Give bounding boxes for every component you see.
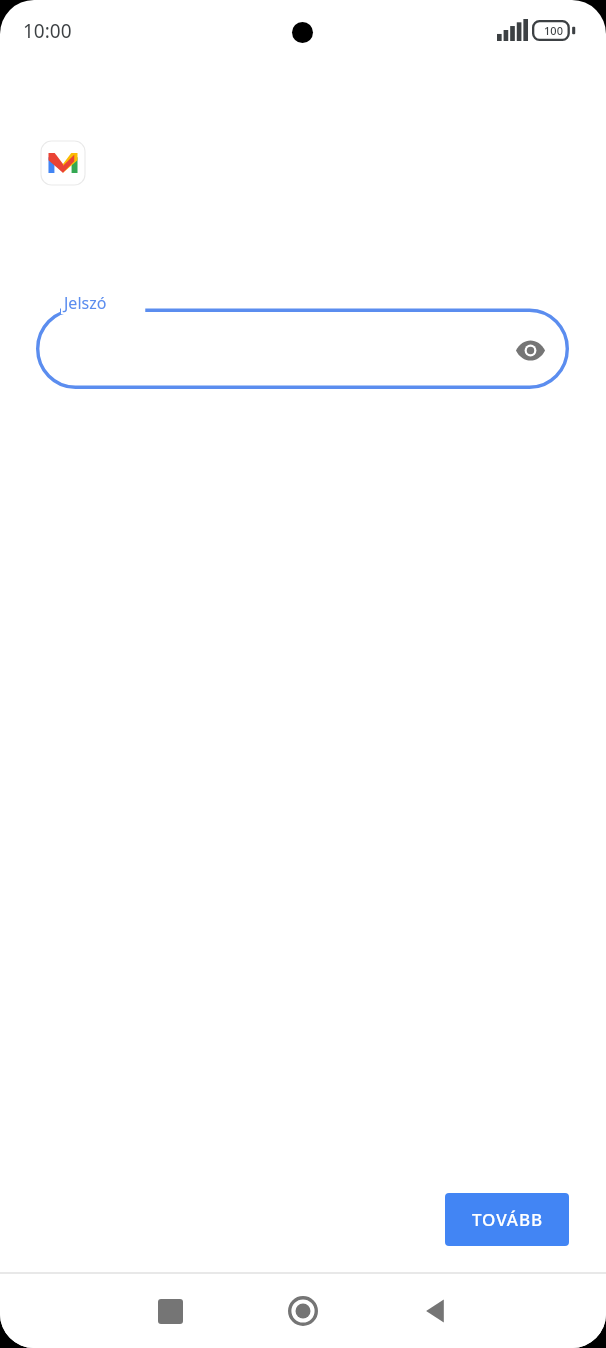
staticText: TOVÁBB (472, 1208, 543, 1231)
button[interactable]: Home (276, 1284, 330, 1338)
button[interactable]: Jelszó (36, 300, 569, 389)
button[interactable]: TOVÁBB (445, 1193, 569, 1246)
staticText: Jelszó (64, 292, 107, 314)
button[interactable]: Jelszó megjelenítése (509, 329, 551, 371)
button[interactable]: Recents (143, 1284, 197, 1338)
button[interactable]: Back (409, 1284, 463, 1338)
staticText: 100 (537, 23, 570, 38)
staticText: 10:00 (23, 18, 72, 44)
